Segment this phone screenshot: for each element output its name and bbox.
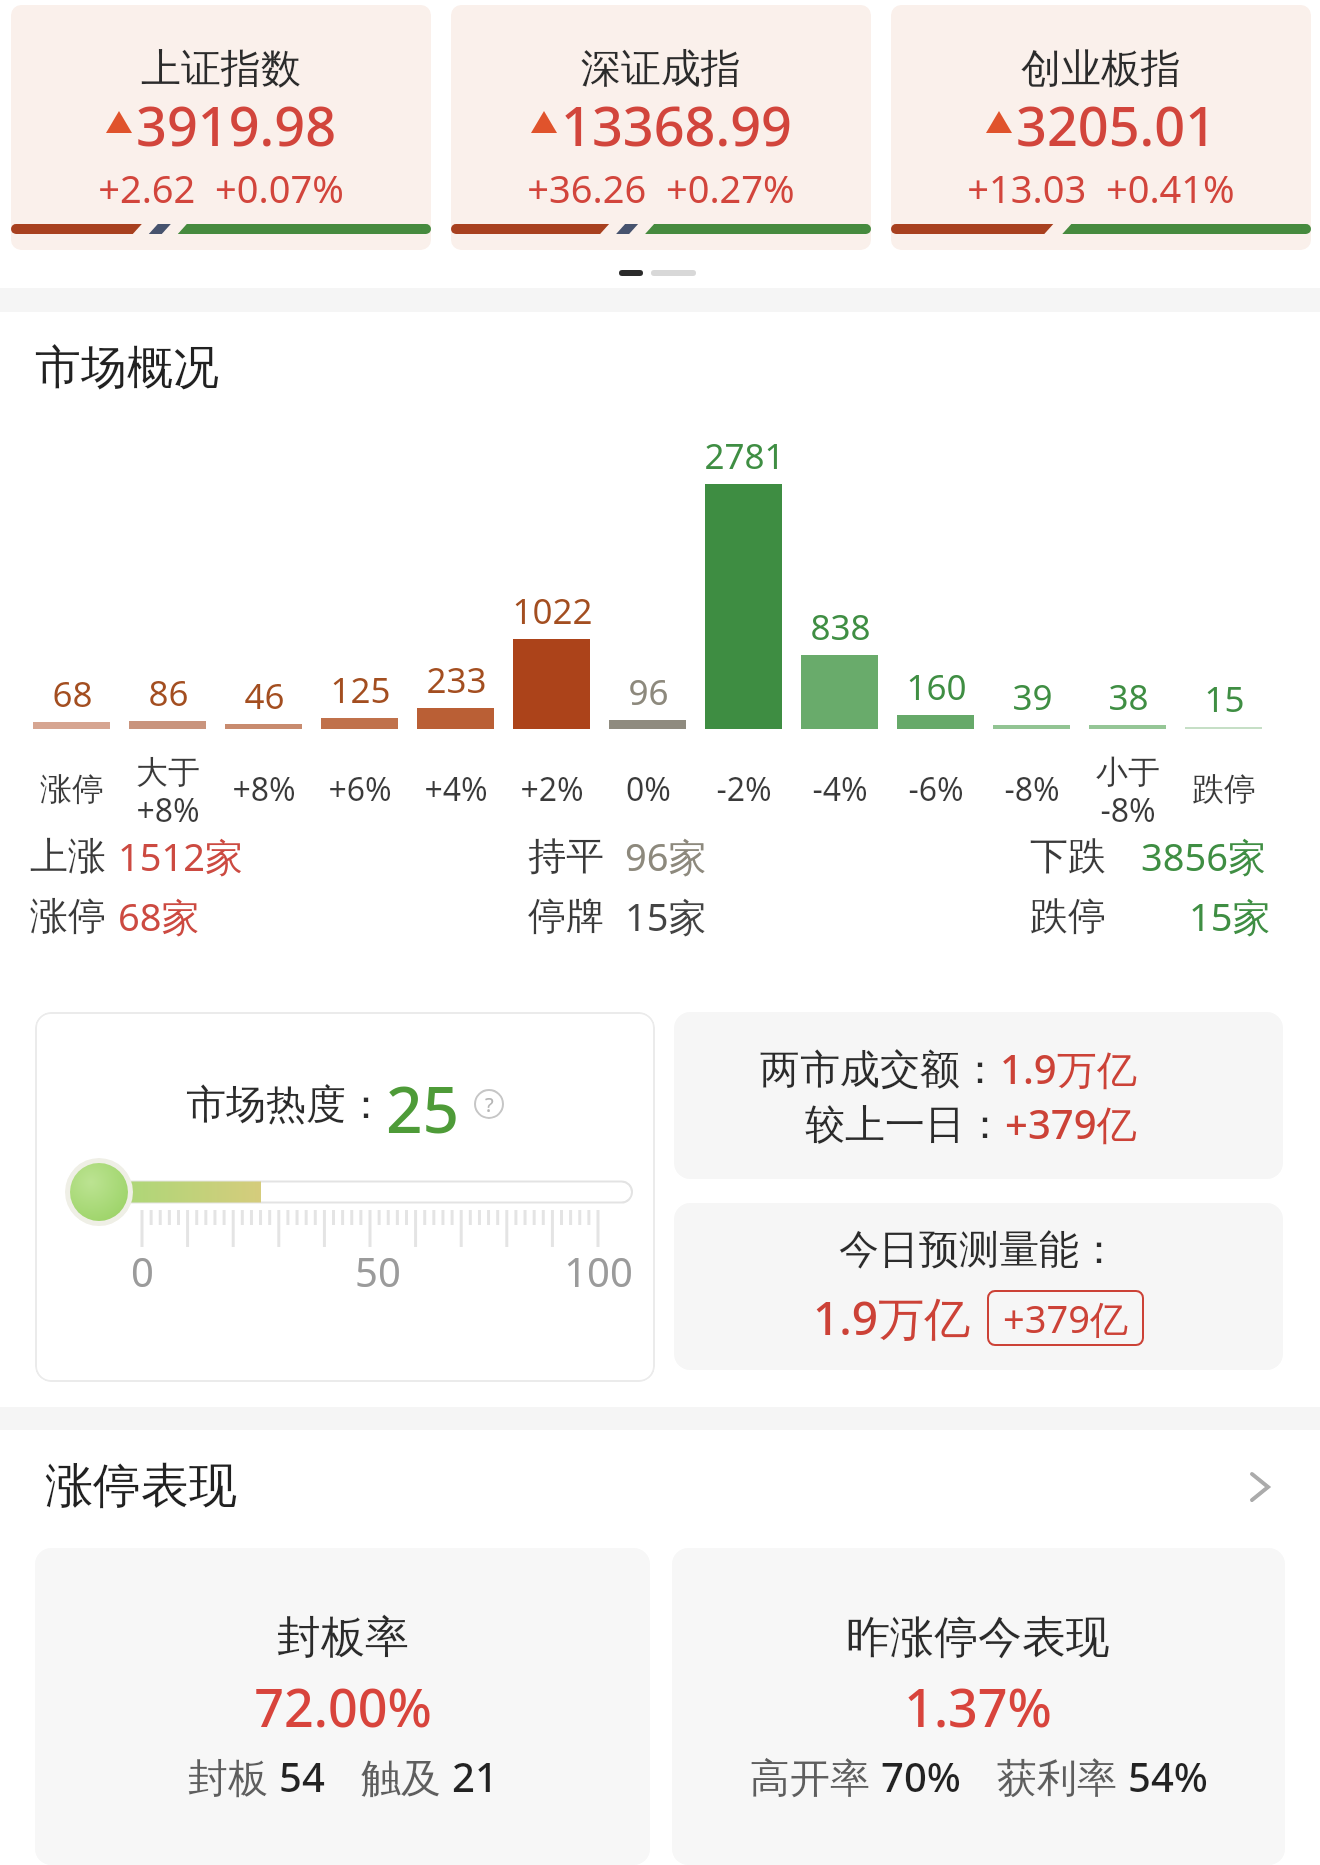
staticText: 96	[628, 668, 669, 716]
staticText: 下跌	[1030, 832, 1106, 880]
button[interactable]: 两市成交额：	[674, 1012, 1283, 1179]
staticText: 15	[1204, 675, 1245, 723]
staticText: 昨涨停今表现	[846, 1610, 1110, 1665]
staticText: 125	[330, 666, 391, 714]
staticText: 68	[52, 670, 93, 718]
staticText: 涨停	[40, 769, 104, 809]
staticText: 0%	[626, 767, 671, 811]
button[interactable]: 今日预测量能：	[674, 1203, 1283, 1370]
staticText: 15家	[625, 890, 707, 942]
button[interactable]: 深证成指	[451, 5, 871, 250]
staticText: 70%	[881, 1749, 961, 1803]
staticText: 38	[1108, 673, 1149, 721]
staticText: 持平	[528, 832, 604, 880]
staticText: +8%	[232, 767, 296, 811]
staticText: 市场热度：	[186, 1079, 386, 1129]
staticText: 高开率	[750, 1749, 881, 1804]
staticText: 54	[279, 1749, 325, 1803]
staticText: 68家	[118, 890, 200, 942]
staticText: 两市成交额：	[760, 1044, 1000, 1094]
staticText: 2781	[704, 432, 785, 480]
staticText: 1022	[512, 587, 593, 635]
staticText: 15家	[1189, 890, 1271, 942]
staticText: 838	[810, 603, 871, 651]
staticText: 1512家	[118, 830, 243, 882]
staticText: 停牌	[528, 892, 604, 940]
staticText: 0	[131, 1244, 154, 1298]
button[interactable]: 涨停表现	[0, 1440, 1320, 1530]
staticText: 3919.98	[136, 88, 337, 156]
staticText: 较上一日：	[805, 1099, 1005, 1149]
staticText: 封板率	[277, 1610, 409, 1665]
staticText: ?	[485, 1091, 494, 1118]
staticText: 86	[148, 669, 189, 717]
staticText: 跌停	[1030, 892, 1106, 940]
staticText: 100	[564, 1244, 633, 1298]
staticText: 50	[355, 1244, 401, 1298]
staticText: 25	[386, 1065, 460, 1143]
staticText: 大于 +8%	[136, 752, 200, 828]
staticText: +2%	[520, 767, 584, 811]
staticText: 跌停	[1192, 769, 1256, 809]
staticText: -6%	[908, 767, 964, 811]
staticText: +2.62 +0.07%	[98, 162, 344, 214]
staticText: 市场概况	[35, 339, 219, 397]
button[interactable]: 上证指数	[11, 5, 431, 250]
staticText: -2%	[716, 767, 772, 811]
staticText: +13.03 +0.41%	[967, 162, 1235, 214]
button[interactable]: 市场热度：	[35, 1012, 655, 1382]
button[interactable]: 创业板指	[891, 5, 1311, 250]
staticText: 小于 -8%	[1096, 752, 1160, 828]
staticText: 233	[426, 656, 487, 704]
staticText: 触及	[361, 1749, 452, 1804]
staticText: 1.9万亿	[1000, 1041, 1137, 1096]
button[interactable]: 昨涨停今表现	[672, 1548, 1285, 1865]
staticText: +36.26 +0.27%	[527, 162, 795, 214]
staticText: 13368.99	[561, 88, 792, 156]
staticText: 46	[244, 672, 285, 720]
staticText: 54%	[1128, 1749, 1208, 1803]
staticText: 上涨	[30, 832, 106, 880]
staticText: 上证指数	[141, 43, 301, 93]
staticText: -4%	[812, 767, 868, 811]
staticText: 今日预测量能：	[839, 1224, 1119, 1274]
staticText: 3856家	[1141, 830, 1266, 882]
staticText: +6%	[328, 767, 392, 811]
staticText: 封板	[188, 1749, 279, 1804]
staticText: 1.9万亿	[813, 1286, 971, 1349]
staticText: 1.37%	[904, 1671, 1052, 1742]
staticText: 96家	[625, 830, 707, 882]
staticText: 涨停表现	[45, 1456, 237, 1516]
staticText: 39	[1012, 673, 1053, 721]
staticText: -8%	[1004, 767, 1060, 811]
staticText: 160	[906, 663, 967, 711]
staticText: 72.00%	[254, 1671, 432, 1742]
staticText: +4%	[424, 767, 488, 811]
staticText: 3205.01	[1016, 88, 1217, 156]
staticText: 深证成指	[581, 43, 741, 93]
staticText: 创业板指	[1021, 43, 1181, 93]
staticText: +379亿	[1003, 1292, 1128, 1344]
staticText: +379亿	[1005, 1096, 1137, 1151]
staticText: 涨停	[30, 892, 106, 940]
button[interactable]: 封板率	[35, 1548, 650, 1865]
staticText: 21	[452, 1749, 498, 1803]
staticText: 获利率	[997, 1749, 1128, 1804]
